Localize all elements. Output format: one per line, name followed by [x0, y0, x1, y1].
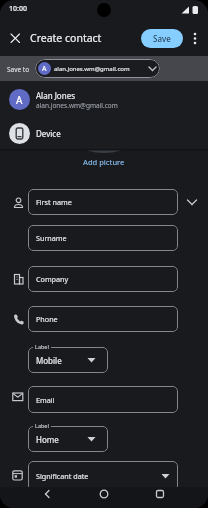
- staticText: Label: [35, 343, 49, 350]
- button[interactable]: A: [35, 59, 160, 78]
- staticText: Add picture: [83, 157, 125, 167]
- staticText: Label: [35, 422, 49, 429]
- staticText: Surname: [36, 233, 67, 243]
- button[interactable]: Mobile: [28, 347, 108, 373]
- button[interactable]: First name: [28, 189, 178, 215]
- staticText: Significant date: [36, 471, 89, 481]
- button[interactable]: [151, 487, 169, 508]
- staticText: Company: [36, 274, 69, 284]
- staticText: First name: [36, 197, 72, 207]
- staticText: Device: [36, 128, 61, 139]
- button[interactable]: Email: [28, 386, 178, 413]
- staticText: Mobile: [36, 355, 62, 366]
- staticText: Save: [153, 33, 171, 44]
- staticText: alan.jones.wm@gmail.com: [54, 65, 130, 73]
- staticText: Create contact: [30, 31, 102, 45]
- button[interactable]: Phone: [28, 306, 178, 332]
- button[interactable]: [188, 31, 202, 46]
- button[interactable]: Add picture: [70, 153, 138, 171]
- staticText: Home: [36, 434, 59, 445]
- button[interactable]: Home: [28, 426, 108, 452]
- staticText: Email: [36, 395, 55, 405]
- staticText: 10:00: [9, 4, 27, 14]
- button[interactable]: Device: [0, 119, 208, 147]
- staticText: Phone: [36, 314, 58, 324]
- staticText: A: [42, 64, 47, 74]
- button[interactable]: A: [0, 84, 208, 115]
- staticText: A: [16, 93, 23, 107]
- button[interactable]: [38, 487, 56, 508]
- button[interactable]: Save: [141, 29, 183, 48]
- button[interactable]: Significant date: [28, 461, 178, 491]
- button[interactable]: [95, 487, 113, 508]
- staticText: Save to: [7, 65, 30, 74]
- button[interactable]: Company: [28, 266, 178, 292]
- button[interactable]: Surname: [28, 225, 178, 251]
- staticText: Alan Jones: [36, 90, 75, 101]
- button[interactable]: [4, 32, 26, 46]
- staticText: alan.jones.wm@gmail.com: [36, 101, 118, 110]
